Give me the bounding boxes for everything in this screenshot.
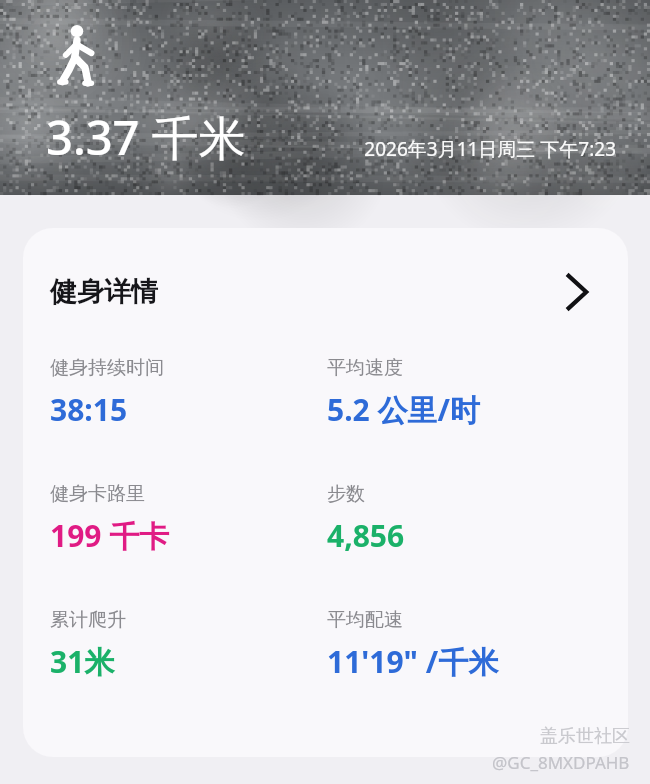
staticText: 健身详情	[50, 275, 158, 309]
staticText: 199 千卡	[50, 515, 170, 556]
staticText: 健身持续时间	[50, 356, 164, 380]
staticText: 31米	[50, 641, 115, 682]
staticText: 平均配速	[327, 608, 403, 632]
staticText: 11'19" /千米	[327, 641, 499, 682]
staticText: 3.37 千米	[46, 105, 246, 169]
staticText: 4,856	[327, 515, 405, 556]
staticText: 2026年3月11日周三 下午7:23	[364, 136, 616, 162]
staticText: 平均速度	[327, 356, 403, 380]
staticText: 5.2 公里/时	[327, 389, 480, 430]
staticText: 累计爬升	[50, 608, 126, 632]
button[interactable]: 健身详情	[23, 228, 628, 356]
staticText: 步数	[327, 482, 365, 506]
staticText: 盖乐世社区	[540, 725, 630, 748]
staticText: @GC_8MXDPAHB	[492, 751, 630, 774]
other: Open workout details	[566, 274, 588, 310]
staticText: 健身卡路里	[50, 482, 145, 506]
staticText: 38:15	[50, 389, 128, 430]
